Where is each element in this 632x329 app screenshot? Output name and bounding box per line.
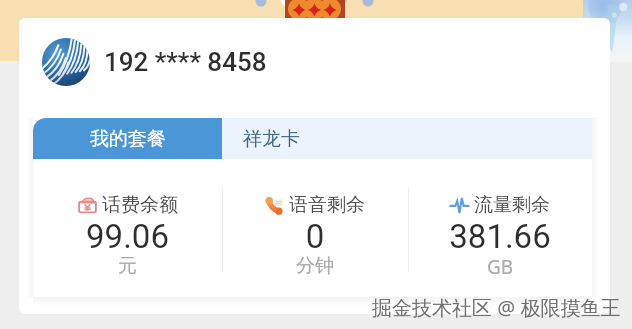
- other: 运营商标志: [42, 38, 90, 86]
- staticText: 祥龙卡: [243, 127, 300, 151]
- staticText: 语音剩余: [289, 193, 365, 217]
- staticText: 192 **** 8458: [104, 47, 267, 77]
- staticText: 381.66: [408, 217, 592, 256]
- staticText: 99.06: [33, 217, 222, 256]
- staticText: 流量剩余: [474, 193, 550, 217]
- button[interactable]: 祥龙卡: [222, 118, 592, 159]
- button[interactable]: 流量剩余: [408, 158, 592, 297]
- staticText: 我的套餐: [90, 127, 166, 151]
- other: 流量剩余: [450, 196, 469, 215]
- staticText: 分钟: [222, 254, 408, 278]
- other: 语音剩余: [265, 196, 284, 215]
- staticText: 掘金技术社区 @ 极限摸鱼王: [372, 294, 621, 321]
- staticText: 话费余额: [102, 193, 178, 217]
- button[interactable]: 运营商标志: [42, 38, 267, 86]
- other: 话费余额: [78, 196, 97, 215]
- staticText: 0: [222, 217, 408, 256]
- staticText: 元: [33, 254, 222, 278]
- button[interactable]: 语音剩余: [222, 158, 408, 297]
- staticText: GB: [408, 254, 592, 280]
- button[interactable]: 话费余额: [33, 158, 222, 297]
- button[interactable]: 我的套餐: [33, 118, 222, 159]
